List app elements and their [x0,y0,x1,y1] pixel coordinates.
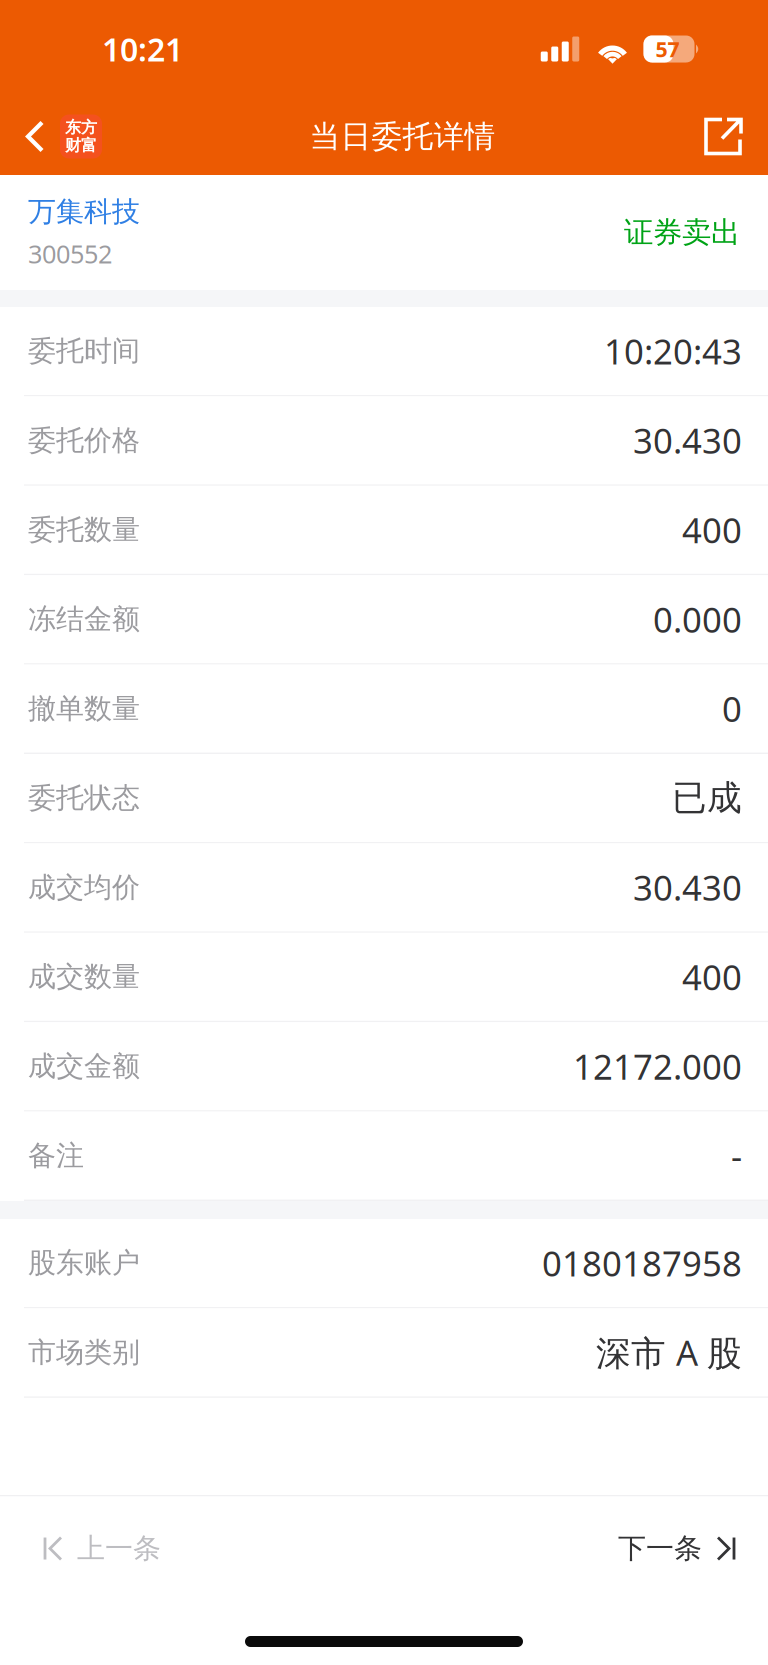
staticText: 成交数量 [28,960,140,994]
staticText: 撤单数量 [28,691,140,726]
staticText: 股东账户 [28,1246,140,1280]
button[interactable]: 上一条 [0,1496,191,1600]
staticText: 备注 [28,1138,84,1173]
staticText: 证券卖出 [624,214,740,250]
staticText: 0.000 [653,596,742,642]
staticText: 东方 [65,118,97,137]
button[interactable]: 分享 [693,98,768,175]
staticText: 万集科技 [28,194,140,229]
staticText: 下一条 [618,1531,702,1566]
staticText: 成交金额 [28,1049,140,1083]
staticText: 上一条 [77,1531,161,1566]
staticText: 冻结金额 [28,602,140,636]
staticText: 30.430 [633,864,742,910]
staticText: 市场类别 [28,1335,140,1370]
staticText: 财富 [65,136,97,155]
staticText: 委托状态 [28,781,140,815]
staticText: - [731,1133,742,1179]
staticText: 12172.000 [573,1043,742,1089]
staticText: 0180187958 [542,1240,742,1286]
staticText: 当日委托详情 [309,118,495,155]
staticText: 10:21 [102,28,183,70]
button[interactable]: 下一条 [588,1496,768,1600]
staticText: 深市 A 股 [596,1329,742,1375]
staticText: 委托数量 [28,513,140,547]
staticText: 已成 [672,777,742,819]
staticText: 400 [682,954,742,1000]
staticText: 成交均价 [28,870,140,905]
staticText: 57 [655,35,679,63]
staticText: 委托时间 [28,334,140,368]
staticText: 0 [722,686,742,732]
button[interactable]: 返回 [0,98,112,175]
staticText: 300552 [28,237,112,270]
staticText: 400 [682,507,742,553]
staticText: 10:20:43 [604,328,742,374]
staticText: 委托价格 [28,423,140,458]
staticText: 30.430 [633,417,742,463]
